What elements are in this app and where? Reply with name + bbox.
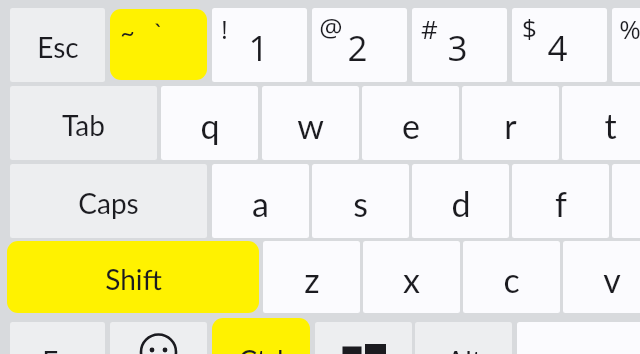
button[interactable]: r xyxy=(462,86,559,160)
staticText: z xyxy=(304,259,320,300)
button[interactable]: Caps xyxy=(10,164,207,238)
staticText: ~ xyxy=(120,17,135,47)
button[interactable]: Ctrl xyxy=(212,318,310,354)
staticText: f xyxy=(555,183,567,224)
staticText: ` xyxy=(153,17,164,47)
staticText: Caps xyxy=(78,186,139,220)
button[interactable]: Shift xyxy=(7,241,259,313)
button[interactable]: ! xyxy=(212,8,307,82)
staticText: 3 xyxy=(447,24,468,72)
button[interactable]: a xyxy=(212,164,309,238)
button[interactable]: e xyxy=(362,86,459,160)
staticText: Alt xyxy=(446,344,482,354)
staticText: ! xyxy=(221,11,228,46)
button[interactable]: Windows xyxy=(315,322,412,354)
button[interactable]: x xyxy=(363,241,460,313)
button[interactable]: Tab xyxy=(10,86,157,160)
staticText: Fn xyxy=(42,344,73,354)
staticText: s xyxy=(353,183,368,224)
staticText: a xyxy=(252,183,269,224)
button[interactable]: c xyxy=(463,241,560,313)
staticText: r xyxy=(504,105,517,146)
staticText: w xyxy=(297,105,324,146)
staticText: $ xyxy=(522,10,537,45)
button[interactable]: Tilde backquote xyxy=(110,9,207,80)
button[interactable]: Esc xyxy=(10,8,105,82)
staticText: 4 xyxy=(547,24,568,72)
staticText: c xyxy=(503,259,520,300)
staticText: Ctrl xyxy=(238,343,284,354)
staticText: 2 xyxy=(347,24,368,72)
button[interactable]: f xyxy=(512,164,609,238)
staticText: d xyxy=(451,183,471,224)
button[interactable]: w xyxy=(262,86,359,160)
staticText: % xyxy=(619,11,640,46)
button[interactable]: # xyxy=(412,8,507,82)
staticText: # xyxy=(421,11,438,46)
staticText: e xyxy=(402,105,420,146)
button[interactable]: Fn xyxy=(10,322,105,354)
button[interactable]: @ xyxy=(312,8,407,82)
staticText: v xyxy=(603,259,621,300)
button[interactable]: z xyxy=(263,241,360,313)
staticText: q xyxy=(200,105,220,146)
button[interactable]: d xyxy=(412,164,509,238)
button[interactable]: $ xyxy=(512,8,607,82)
staticText: 1 xyxy=(248,24,269,72)
staticText: Esc xyxy=(37,30,79,64)
button[interactable]: Alt xyxy=(415,322,512,354)
staticText: @ xyxy=(319,9,343,44)
staticText: Shift xyxy=(105,262,162,296)
button[interactable]: Emoji xyxy=(110,322,207,354)
staticText: Tab xyxy=(62,108,105,142)
staticText: x xyxy=(403,259,420,300)
button[interactable]: v xyxy=(563,241,640,313)
button[interactable]: t xyxy=(562,86,640,160)
button[interactable]: s xyxy=(312,164,409,238)
staticText: t xyxy=(604,105,617,146)
button[interactable]: % xyxy=(612,8,640,82)
button[interactable]: q xyxy=(161,86,258,160)
